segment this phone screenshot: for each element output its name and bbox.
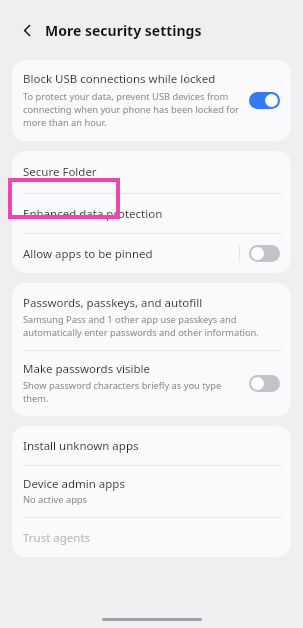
staticText: More security settings xyxy=(45,21,202,40)
button[interactable]: Enhanced data protection xyxy=(12,194,291,233)
button[interactable]: Block USB connections while locked xyxy=(249,92,280,109)
staticText: Install unknown apps xyxy=(23,438,139,454)
button[interactable]: Allow apps to be pinned xyxy=(12,234,291,273)
button[interactable]: Trust agents xyxy=(12,518,291,557)
button[interactable]: Allow apps to be pinned xyxy=(249,245,280,262)
button[interactable]: Passwords, passkeys, and autofill xyxy=(12,283,291,350)
button[interactable]: Make passwords visible xyxy=(249,375,280,392)
staticText: Device admin apps xyxy=(23,476,125,492)
button[interactable]: Make passwords visible xyxy=(12,351,291,416)
staticText: Make passwords visible xyxy=(23,361,150,377)
staticText: Samsung Pass and 1 other app use passkey… xyxy=(23,313,280,339)
staticText: No active apps xyxy=(23,493,88,506)
staticText: To protect your data, prevent USB device… xyxy=(23,90,241,129)
button[interactable]: Back xyxy=(15,18,39,42)
button[interactable]: Install unknown apps xyxy=(12,426,291,465)
staticText: Enhanced data protection xyxy=(23,206,163,222)
button[interactable]: Block USB connections while locked xyxy=(12,60,291,141)
staticText: Passwords, passkeys, and autofill xyxy=(23,295,203,311)
staticText: Allow apps to be pinned xyxy=(23,246,153,262)
staticText: Secure Folder xyxy=(23,164,97,180)
staticText: Trust agents xyxy=(23,530,91,546)
button[interactable]: Secure Folder xyxy=(12,151,291,193)
staticText: Show password characters briefly as you … xyxy=(23,379,241,405)
staticText: Block USB connections while locked xyxy=(23,71,216,87)
button[interactable]: Device admin apps xyxy=(12,466,291,517)
